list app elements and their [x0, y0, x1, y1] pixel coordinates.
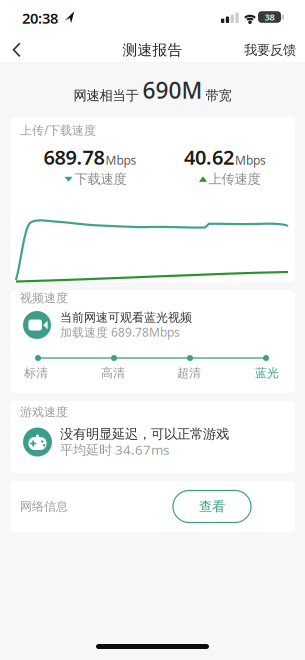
- staticText: 我要反馈: [244, 42, 296, 58]
- staticText: 平均延时 34.67ms: [60, 441, 169, 458]
- staticText: 测速报告: [122, 41, 182, 59]
- staticText: 查看: [199, 498, 225, 515]
- staticText: 蓝光: [255, 366, 279, 380]
- staticText: 下载速度: [74, 171, 126, 187]
- staticText: 游戏速度: [20, 405, 68, 419]
- staticText: 超清: [177, 366, 201, 380]
- staticText: 视频速度: [20, 291, 68, 305]
- staticText: Mbps: [105, 152, 136, 168]
- staticText: 网速相当于 690M 带宽: [73, 75, 231, 105]
- staticText: 38: [264, 11, 274, 23]
- button[interactable]: [13, 42, 21, 57]
- staticText: 上传速度: [208, 171, 260, 187]
- staticText: 当前网速可观看蓝光视频: [60, 310, 192, 325]
- staticText: 高清: [101, 366, 125, 380]
- staticText: 没有明显延迟，可以正常游戏: [60, 426, 229, 442]
- staticText: 40.62: [184, 144, 234, 170]
- staticText: 上传/下载速度: [20, 122, 96, 138]
- button[interactable]: 我要反馈: [244, 42, 296, 58]
- staticText: 网络信息: [20, 499, 68, 514]
- staticText: 加载速度 689.78Mbps: [60, 324, 180, 340]
- staticText: 689.78: [43, 144, 104, 170]
- staticText: 标清: [24, 366, 48, 380]
- button[interactable]: 查看: [173, 490, 251, 522]
- staticText: Mbps: [235, 152, 266, 168]
- staticText: 20:38: [22, 8, 58, 28]
